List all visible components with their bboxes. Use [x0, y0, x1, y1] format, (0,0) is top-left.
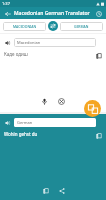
- button[interactable]: Copy source text: [94, 51, 103, 60]
- button[interactable]: Copy: [40, 185, 51, 196]
- staticText: 1:37: [2, 1, 10, 6]
- staticText: Macedonian: [17, 40, 41, 45]
- button[interactable]: Clear text: [56, 96, 67, 107]
- button[interactable]: Voice input: [39, 96, 50, 107]
- staticText: Каде одиш: [4, 51, 94, 57]
- staticText: Macedonian German Translator: [14, 10, 93, 17]
- button[interactable]: Share: [56, 185, 67, 196]
- button[interactable]: Macedonian: [14, 38, 96, 47]
- staticText: MACEDONIAN: [13, 24, 37, 29]
- button[interactable]: Copy translation: [94, 131, 103, 140]
- staticText: Wohin gehst du: [4, 131, 94, 137]
- button[interactable]: Back: [3, 9, 12, 18]
- button[interactable]: Speak translation: [3, 118, 12, 127]
- button[interactable]: German: [14, 118, 96, 127]
- staticText: GERMAN: [74, 24, 89, 29]
- button[interactable]: History: [94, 9, 103, 18]
- button[interactable]: Swap languages: [48, 21, 58, 31]
- button[interactable]: Translate: [84, 100, 101, 117]
- button[interactable]: MACEDONIAN: [3, 22, 46, 31]
- staticText: German: [17, 120, 33, 125]
- button[interactable]: GERMAN: [60, 22, 103, 31]
- button[interactable]: Speak source: [3, 38, 12, 47]
